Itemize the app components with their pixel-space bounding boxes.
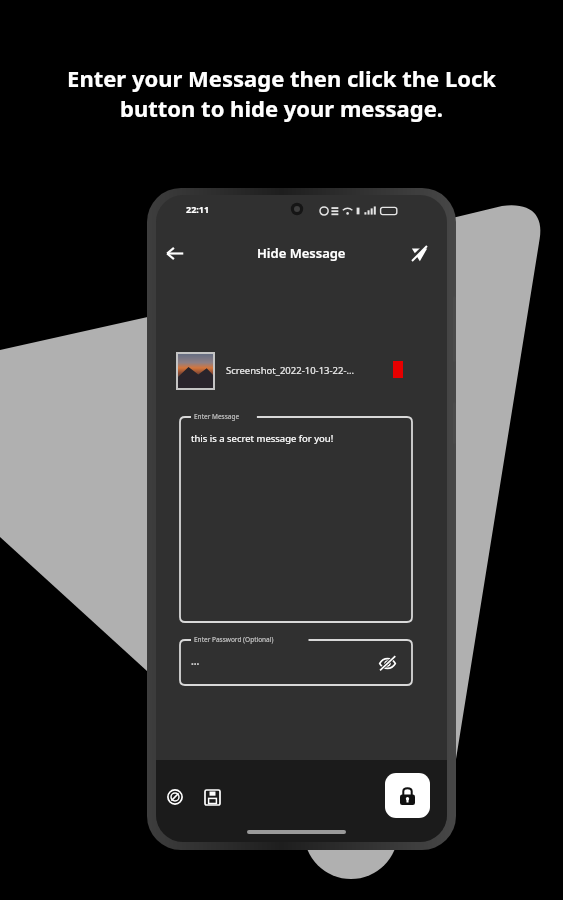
staticText: Screenshot_2022-10-13-22-... bbox=[226, 364, 355, 377]
staticText: Enter Password (Optional) bbox=[194, 635, 274, 644]
staticText: ... bbox=[191, 654, 200, 668]
staticText: 22:11 bbox=[186, 203, 210, 215]
button[interactable]: Screenshot_2022-10-13-22-... bbox=[172, 349, 387, 393]
button[interactable]: Delete bbox=[386, 357, 410, 381]
staticText: Enter Message bbox=[194, 412, 240, 421]
button[interactable]: Encrypt bbox=[161, 783, 189, 811]
button[interactable]: Back bbox=[159, 237, 191, 269]
staticText: Hide Message bbox=[257, 244, 346, 262]
button[interactable]: Save bbox=[198, 783, 226, 811]
button[interactable]: Lock message bbox=[385, 773, 430, 818]
button[interactable]: Send disabled bbox=[403, 237, 435, 269]
staticText: Enter your Message then click the Lock b… bbox=[67, 63, 496, 124]
button[interactable]: Toggle password visibility bbox=[374, 650, 400, 676]
staticText: this is a secret message for you! bbox=[191, 432, 334, 445]
